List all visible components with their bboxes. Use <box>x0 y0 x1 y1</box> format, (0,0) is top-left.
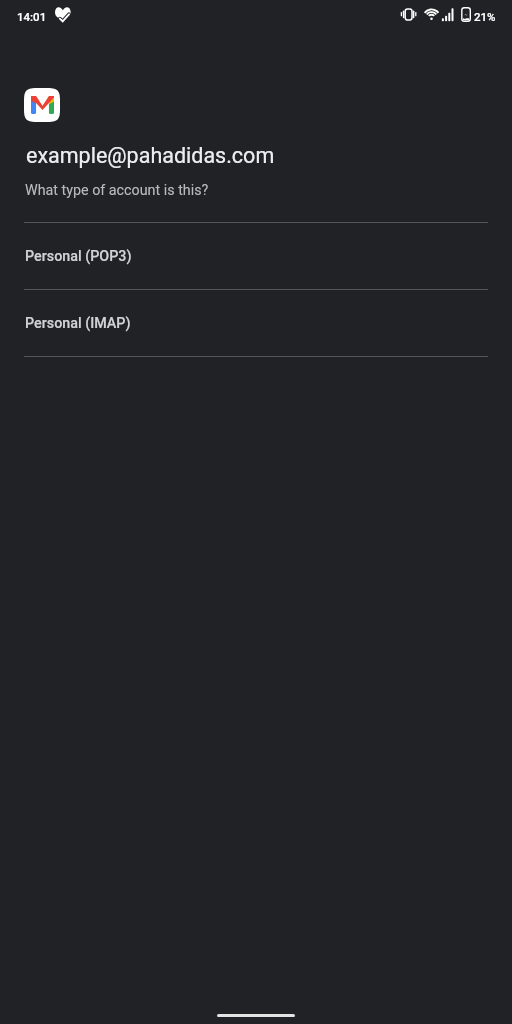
other: Gmail <box>24 88 60 122</box>
button[interactable]: Personal (POP3) <box>0 223 512 289</box>
button[interactable]: Personal (IMAP) <box>0 290 512 356</box>
staticText: example@pahadidas.com <box>26 143 275 168</box>
staticText: Personal (POP3) <box>25 248 132 265</box>
other: Vibrate mode <box>397 6 418 24</box>
staticText: What type of account is this? <box>25 182 209 199</box>
other: Wi-Fi signal full <box>422 6 441 24</box>
other: Mobile signal full <box>441 6 455 24</box>
staticText: Personal (IMAP) <box>25 315 131 332</box>
other: Battery charging 21 percent <box>460 6 472 24</box>
other: Samsung Health <box>54 6 72 24</box>
staticText: 21% <box>474 10 496 23</box>
staticText: 14:01 <box>17 10 47 23</box>
